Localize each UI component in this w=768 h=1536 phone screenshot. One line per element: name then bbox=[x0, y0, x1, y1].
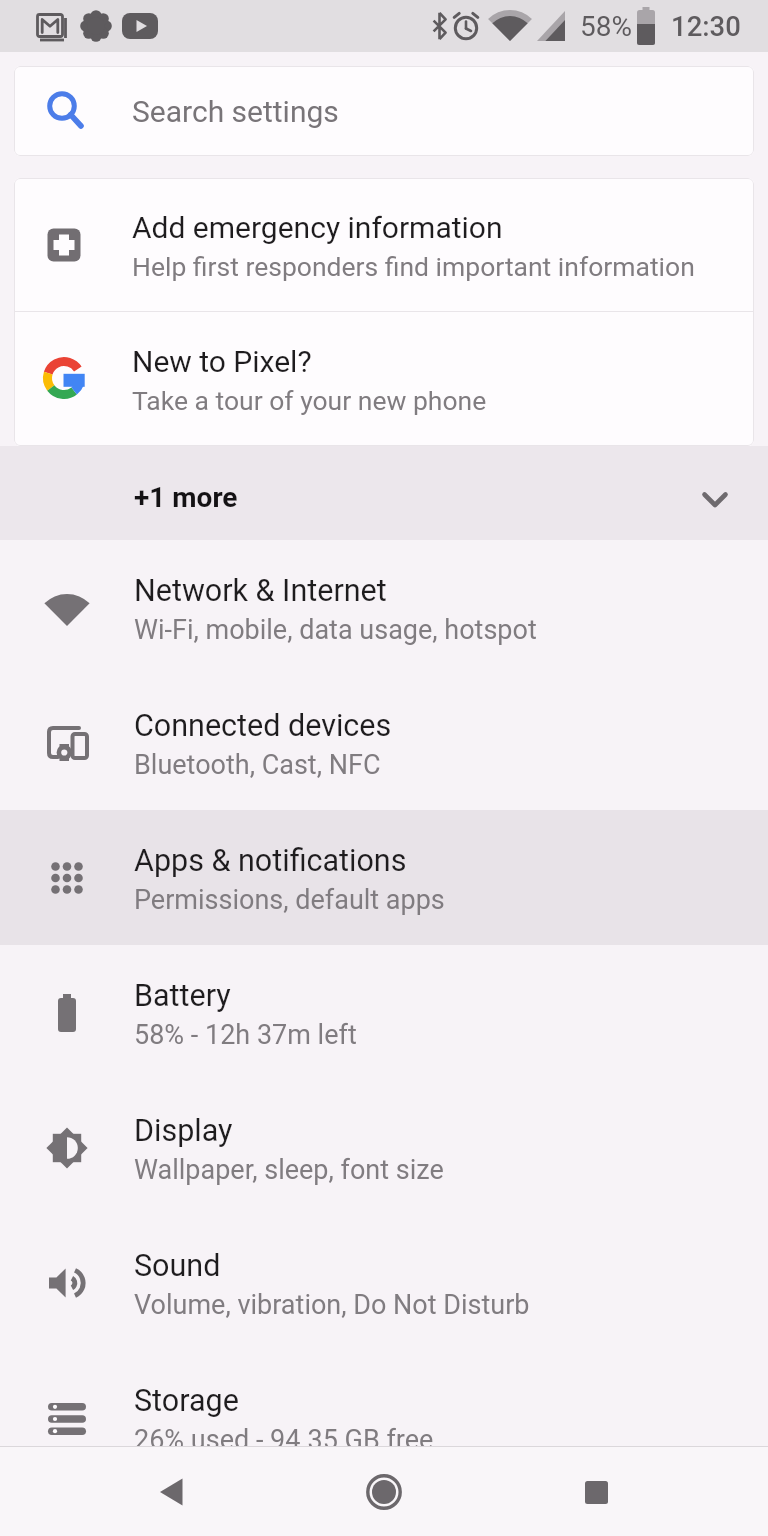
button[interactable]: Add emergency information bbox=[14, 178, 754, 311]
staticText: Display bbox=[134, 1113, 233, 1149]
staticText: 26% used - 94.35 GB free bbox=[134, 1424, 434, 1456]
staticText: Wallpaper, sleep, font size bbox=[134, 1154, 444, 1186]
button[interactable]: Connected devices bbox=[0, 675, 768, 810]
staticText: Storage bbox=[134, 1383, 239, 1419]
staticText: Network & Internet bbox=[134, 573, 387, 609]
staticText: Take a tour of your new phone bbox=[132, 385, 487, 416]
staticText: Add emergency information bbox=[132, 210, 503, 245]
button[interactable]: Storage bbox=[0, 1350, 768, 1485]
button[interactable] bbox=[360, 1468, 408, 1516]
staticText: Apps & notifications bbox=[134, 843, 407, 879]
staticText: Connected devices bbox=[134, 708, 392, 744]
staticText: Help first responders find important inf… bbox=[132, 251, 695, 282]
button[interactable] bbox=[147, 1468, 195, 1516]
button[interactable] bbox=[572, 1468, 620, 1516]
staticText: Volume, vibration, Do Not Disturb bbox=[134, 1289, 530, 1321]
button[interactable]: Search settings bbox=[14, 66, 754, 156]
staticText: 58% bbox=[580, 10, 632, 43]
staticText: Sound bbox=[134, 1248, 221, 1284]
button[interactable]: Apps & notifications bbox=[0, 810, 768, 945]
button[interactable]: +1 more bbox=[0, 446, 768, 540]
staticText: Search settings bbox=[132, 94, 339, 129]
staticText: +1 more bbox=[134, 481, 238, 514]
button[interactable]: Network & Internet bbox=[0, 540, 768, 675]
button[interactable]: New to Pixel? bbox=[14, 312, 754, 444]
staticText: 12:30 bbox=[671, 10, 741, 42]
staticText: Bluetooth, Cast, NFC bbox=[134, 749, 381, 781]
staticText: Battery bbox=[134, 978, 231, 1014]
staticText: New to Pixel? bbox=[132, 344, 312, 379]
button[interactable]: Battery bbox=[0, 945, 768, 1080]
button[interactable]: Display bbox=[0, 1080, 768, 1215]
staticText: Permissions, default apps bbox=[134, 884, 445, 916]
button[interactable]: Sound bbox=[0, 1215, 768, 1350]
staticText: Wi-Fi, mobile, data usage, hotspot bbox=[134, 614, 537, 646]
staticText: 58% - 12h 37m left bbox=[134, 1019, 357, 1051]
